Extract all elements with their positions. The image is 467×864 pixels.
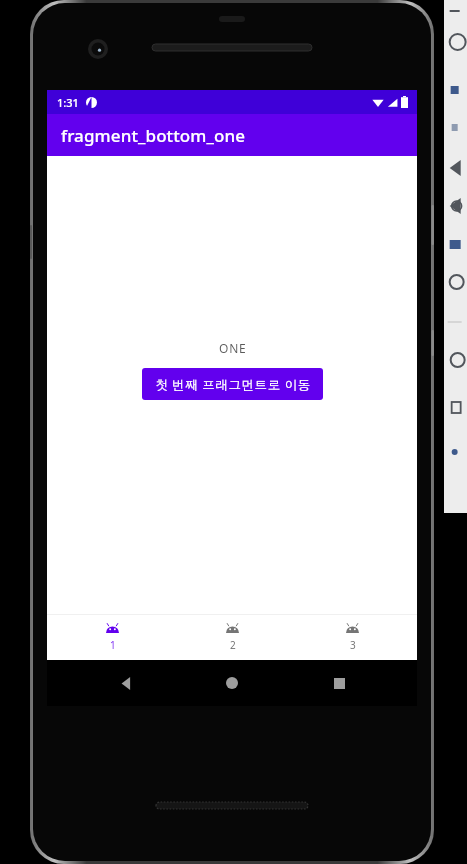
staticText: ONE (219, 340, 247, 356)
staticText: 1:31 (57, 95, 79, 110)
staticText: 첫 번째 프래그먼트로 이동 (155, 376, 311, 393)
button[interactable]: Recent apps (311, 660, 367, 706)
button[interactable]: Home (204, 660, 260, 706)
staticText: fragment_bottom_one (61, 124, 246, 147)
staticText: 1 (110, 638, 116, 652)
button[interactable]: Tab 3 (297, 615, 407, 660)
staticText: 3 (350, 638, 356, 652)
button[interactable]: Tab 1 (57, 615, 167, 660)
button[interactable]: Back (98, 660, 154, 706)
button[interactable]: 첫 번째 프래그먼트로 이동 (142, 368, 323, 400)
button[interactable]: Tab 2 (177, 615, 287, 660)
staticText: 2 (230, 638, 236, 652)
